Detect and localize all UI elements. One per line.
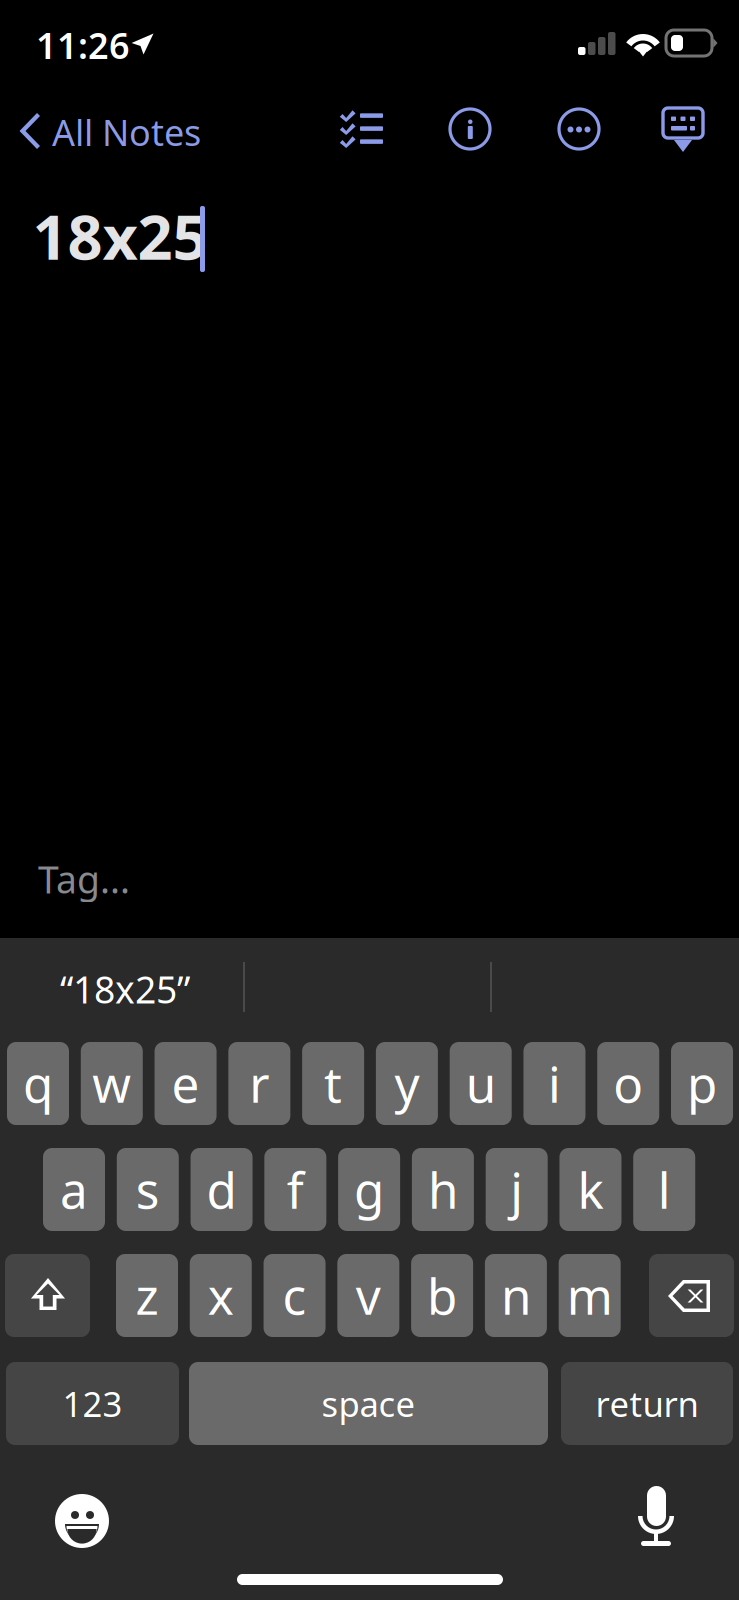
button[interactable]: z (116, 1254, 178, 1337)
button[interactable]: Hide Keyboard (663, 108, 703, 154)
button[interactable]: q (7, 1042, 69, 1125)
button[interactable]: Checklist (341, 110, 385, 146)
staticText: a (60, 1157, 88, 1222)
staticText: w (92, 1051, 131, 1116)
button[interactable]: space (189, 1362, 548, 1445)
button[interactable]: y (376, 1042, 438, 1125)
button[interactable]: return (561, 1362, 733, 1445)
button[interactable]: l (633, 1148, 695, 1231)
button[interactable]: Emoji Keyboard (55, 1494, 109, 1548)
staticText: i (548, 1051, 561, 1116)
button[interactable]: e (155, 1042, 217, 1125)
staticText: 18x25 (32, 195, 207, 277)
staticText: v (356, 1263, 381, 1328)
button[interactable]: d (191, 1148, 253, 1231)
staticText: x (208, 1263, 234, 1328)
staticText: j (510, 1157, 523, 1222)
button[interactable]: Dictate (633, 1486, 679, 1548)
button[interactable]: g (338, 1148, 400, 1231)
button[interactable]: f (264, 1148, 326, 1231)
button[interactable]: Note Info (450, 109, 490, 149)
button[interactable]: o (597, 1042, 659, 1125)
staticText: h (428, 1157, 458, 1222)
staticText: s (136, 1157, 160, 1222)
button[interactable]: j (486, 1148, 548, 1231)
button[interactable]: u (450, 1042, 512, 1125)
button[interactable]: p (671, 1042, 733, 1125)
staticText: e (172, 1051, 200, 1116)
button[interactable]: n (485, 1254, 547, 1337)
staticText: n (501, 1263, 531, 1328)
button[interactable]: i (523, 1042, 585, 1125)
staticText: b (427, 1263, 457, 1328)
staticText: r (249, 1051, 269, 1116)
button[interactable]: All Notes (17, 107, 203, 157)
button[interactable]: Tag... (38, 856, 228, 902)
staticText: m (567, 1263, 613, 1328)
staticText: All Notes (52, 108, 201, 156)
staticText: l (658, 1157, 671, 1222)
staticText: “18x25” (60, 964, 190, 1014)
button[interactable]: b (411, 1254, 473, 1337)
button[interactable]: Delete (649, 1254, 734, 1337)
button[interactable]: s (117, 1148, 179, 1231)
button[interactable]: k (559, 1148, 621, 1231)
button[interactable]: h (412, 1148, 474, 1231)
staticText: 123 (62, 1380, 122, 1426)
staticText: u (466, 1051, 496, 1116)
staticText: f (287, 1157, 304, 1222)
button[interactable]: a (43, 1148, 105, 1231)
button[interactable]: 123 (6, 1362, 179, 1445)
staticText: space (321, 1380, 415, 1426)
staticText: z (135, 1263, 158, 1328)
button[interactable]: Shift (5, 1254, 90, 1337)
button[interactable]: m (559, 1254, 621, 1337)
button[interactable]: t (302, 1042, 364, 1125)
staticText: d (207, 1157, 237, 1222)
button[interactable]: v (337, 1254, 399, 1337)
button[interactable]: w (81, 1042, 143, 1125)
button[interactable]: x (190, 1254, 252, 1337)
staticText: q (23, 1051, 53, 1116)
staticText: k (577, 1157, 603, 1222)
staticText: y (394, 1051, 419, 1116)
staticText: g (354, 1157, 384, 1222)
button[interactable]: r (228, 1042, 290, 1125)
staticText: Tag... (38, 854, 130, 904)
staticText: o (613, 1051, 643, 1116)
staticText: 11:26 (36, 21, 130, 69)
button[interactable]: c (264, 1254, 326, 1337)
button[interactable]: More (559, 109, 599, 149)
staticText: return (595, 1380, 698, 1426)
staticText: c (283, 1263, 307, 1328)
staticText: t (324, 1051, 342, 1116)
staticText: p (687, 1051, 717, 1116)
